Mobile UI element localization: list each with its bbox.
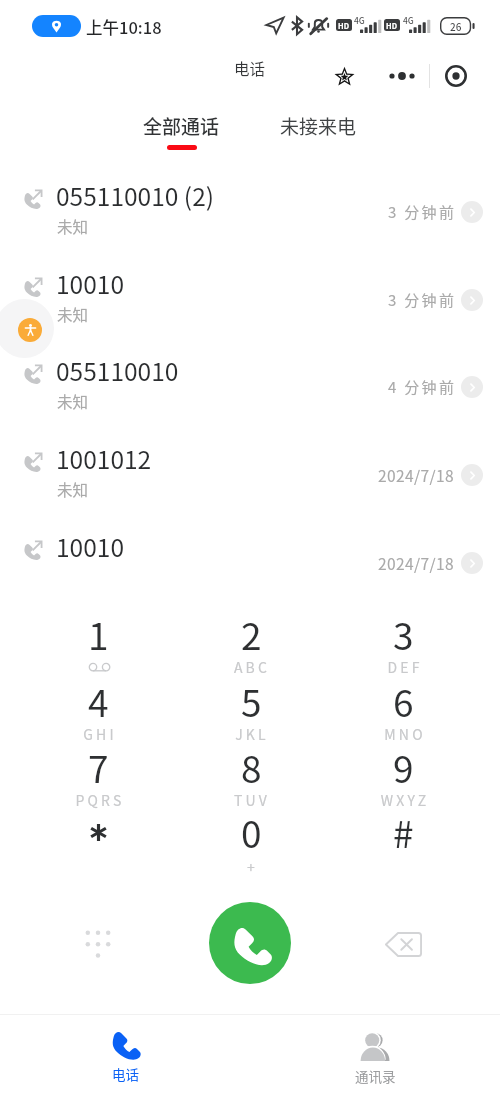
button[interactable]: 2 [189, 602, 313, 668]
staticText: 10010 [56, 529, 124, 564]
button[interactable]: Call [209, 902, 291, 984]
staticText: PQRS [70, 790, 130, 810]
staticText: # [393, 805, 414, 859]
button[interactable]: Favorites [322, 54, 366, 98]
staticText: 1 [88, 607, 109, 661]
staticText: 未知 [57, 303, 89, 325]
staticText: DEF [375, 657, 435, 677]
button[interactable]: 6 [341, 669, 465, 735]
button[interactable]: Accessibility [0, 299, 54, 358]
button[interactable]: More options [380, 54, 424, 98]
staticText: 3 分钟前 [388, 289, 457, 311]
button[interactable]: 3 [341, 602, 465, 668]
button[interactable]: 未接来电 [268, 104, 368, 150]
staticText: 电话 [112, 1064, 139, 1084]
staticText: MNO [375, 724, 435, 744]
staticText: TUV [222, 790, 282, 810]
staticText: 未知 [57, 215, 89, 237]
staticText: 3 分钟前 [388, 201, 457, 223]
staticText: HD [338, 20, 350, 31]
staticText: 5 [241, 674, 262, 728]
staticText: 4 [88, 674, 109, 728]
staticText: 上午10:18 [86, 15, 162, 39]
button[interactable]: 4 [36, 669, 160, 735]
button[interactable]: 055110010 [0, 342, 500, 429]
staticText: 055110010 (2) [56, 178, 215, 213]
staticText: 055110010 [56, 353, 179, 388]
staticText: JKL [222, 724, 282, 744]
button[interactable]: Delete [379, 917, 427, 965]
staticText: 26 [450, 19, 462, 33]
staticText: + [221, 857, 281, 877]
button[interactable]: 1001012 [0, 430, 500, 517]
staticText: GHI [70, 724, 130, 744]
staticText: 电话 [234, 57, 266, 79]
button[interactable]: 1 [36, 602, 160, 668]
staticText: 7 [88, 740, 109, 794]
staticText: 10010 [56, 266, 124, 301]
button[interactable]: 9 [341, 735, 465, 801]
staticText: 未接来电 [280, 112, 357, 140]
staticText: 6 [393, 674, 414, 728]
button[interactable]: Call recording [434, 54, 478, 98]
button[interactable]: 通讯录 [325, 1022, 425, 1094]
staticText: ABC [222, 657, 282, 677]
staticText: 全部通话 [143, 112, 220, 140]
staticText: 9 [393, 740, 414, 794]
staticText: HD [386, 20, 398, 31]
button[interactable]: 10010 [0, 255, 500, 342]
staticText: 3 [393, 607, 414, 661]
button[interactable]: 8 [189, 735, 313, 801]
staticText: WXYZ [375, 790, 435, 810]
button[interactable]: 全部通话 [131, 104, 231, 150]
staticText: 2 [241, 607, 262, 661]
staticText: 4 分钟前 [388, 376, 457, 398]
staticText: 2024/7/18 [378, 464, 454, 486]
staticText: 8 [241, 740, 262, 794]
staticText: 0 [241, 805, 262, 859]
staticText: 通讯录 [355, 1066, 396, 1086]
button[interactable]: 0 [189, 800, 313, 866]
button[interactable]: 055110010 (2) [0, 167, 500, 254]
button[interactable]: # [341, 800, 465, 866]
button[interactable]: 7 [36, 735, 160, 801]
button[interactable]: Hide keypad [74, 919, 122, 967]
button[interactable]: 电话 [75, 1022, 175, 1094]
button[interactable]: 10010 [0, 518, 500, 605]
staticText: 2024/7/18 [378, 552, 454, 574]
staticText: 4G [403, 14, 414, 26]
staticText: 未知 [57, 478, 89, 500]
button[interactable] [36, 800, 160, 866]
staticText: 未知 [57, 390, 89, 412]
staticText: 4G [354, 14, 365, 26]
staticText: 1001012 [56, 441, 152, 476]
button[interactable]: 5 [189, 669, 313, 735]
